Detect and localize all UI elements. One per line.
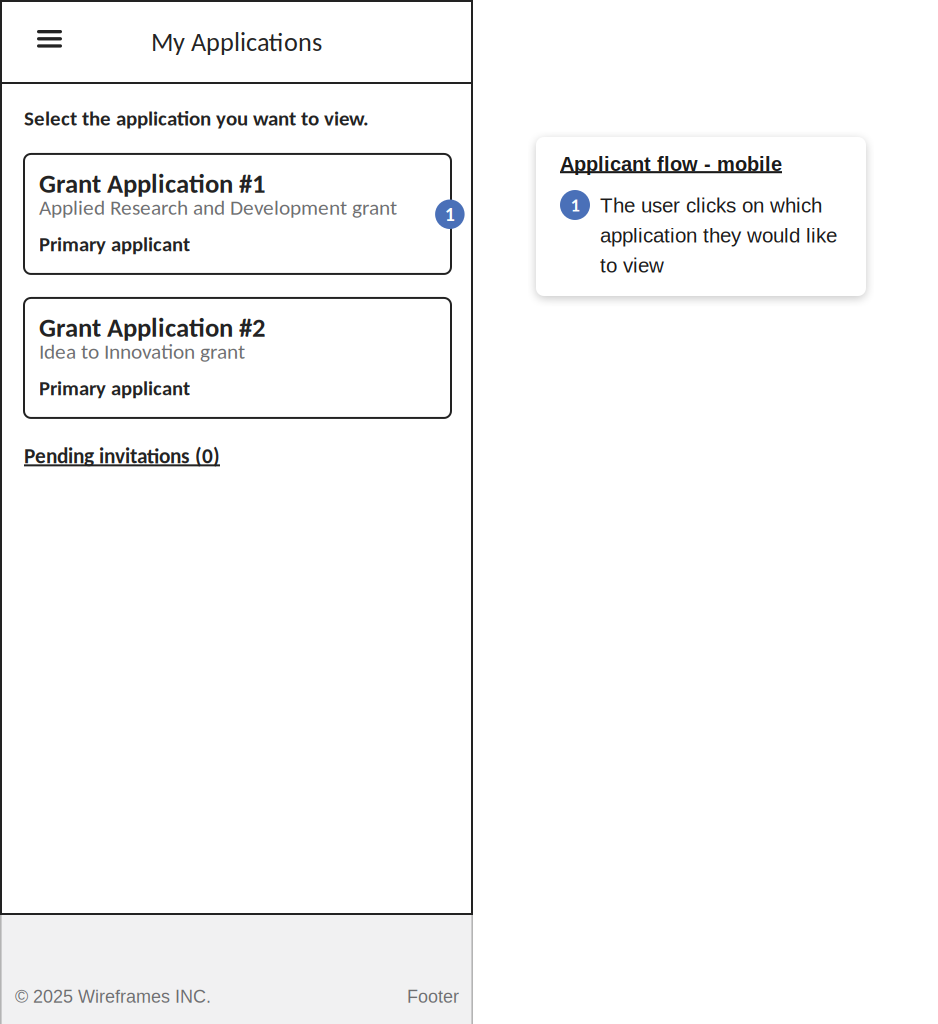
staticText: Select the application you want to view. xyxy=(24,106,369,131)
staticText: Idea to Innovation grant xyxy=(39,338,245,364)
staticText: Primary applicant xyxy=(39,231,190,257)
staticText: Grant Application #2 xyxy=(39,311,266,344)
staticText: 1 xyxy=(445,202,455,226)
staticText: Applicant flow - mobile xyxy=(560,153,782,175)
staticText: Primary applicant xyxy=(39,375,190,401)
button[interactable]: Open menu xyxy=(28,24,71,60)
button[interactable]: Grant Application #2 xyxy=(24,298,451,418)
staticText: 1 xyxy=(570,194,579,216)
staticText: Applied Research and Development grant xyxy=(39,194,397,220)
staticText: Grant Application #1 xyxy=(39,167,266,200)
button[interactable]: Grant Application #1 xyxy=(24,154,451,274)
staticText: Footer xyxy=(407,986,459,1006)
staticText: © 2025 Wireframes INC. xyxy=(15,986,211,1006)
staticText: The user clicks on which application the… xyxy=(600,194,837,277)
staticText: My Applications xyxy=(151,26,322,58)
button[interactable]: Pending invitations (0) xyxy=(24,443,220,469)
staticText: Pending invitations (0) xyxy=(24,443,220,469)
